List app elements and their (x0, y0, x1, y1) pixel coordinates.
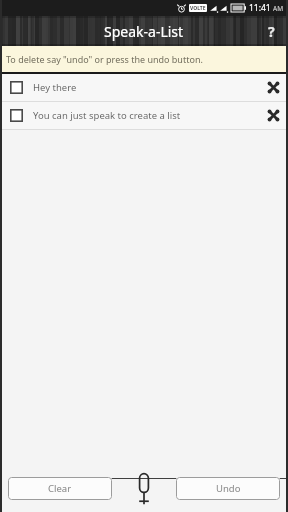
button[interactable]: Speak (124, 465, 164, 512)
staticText: Clear (48, 482, 72, 495)
staticText: AM (273, 4, 284, 13)
button[interactable]: Check You can just speak to create a lis… (10, 109, 23, 122)
button[interactable]: Delete You can just speak to create a li… (258, 102, 288, 129)
staticText: Speak-a-List (104, 22, 184, 41)
button[interactable]: Check Hey there (0, 74, 288, 101)
staticText: Hey there (33, 81, 258, 94)
staticText: Undo (216, 482, 241, 495)
staticText: VOLTE (190, 5, 206, 12)
button[interactable]: Clear (8, 477, 112, 500)
button[interactable]: Delete Hey there (258, 74, 288, 101)
button[interactable]: Check You can just speak to create a lis… (0, 102, 288, 129)
button[interactable]: Help (254, 16, 288, 46)
staticText: ? (268, 22, 275, 41)
staticText: 11:41 (249, 2, 271, 14)
button[interactable]: Undo (176, 477, 280, 500)
button[interactable]: Check Hey there (10, 81, 23, 94)
staticText: To delete say "undo" or press the undo b… (6, 53, 203, 65)
staticText: You can just speak to create a list (33, 109, 258, 122)
